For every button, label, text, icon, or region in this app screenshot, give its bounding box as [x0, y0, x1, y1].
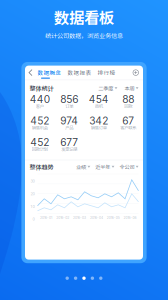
staticText: 2016-01	[40, 216, 52, 220]
staticText: 452	[30, 115, 49, 127]
staticText: 452	[30, 136, 49, 148]
staticText: 2016-05	[107, 216, 120, 220]
staticText: 2016-06	[124, 216, 137, 220]
staticText: 2016-03	[73, 216, 86, 220]
button[interactable]: 数据概览	[37, 68, 61, 77]
staticText: 排行榜	[97, 68, 115, 77]
staticText: 商机	[95, 103, 103, 109]
staticText: 677	[60, 136, 78, 148]
staticText: 数据报表	[67, 68, 91, 77]
button[interactable]: 342	[84, 116, 113, 130]
button[interactable]: 677	[54, 138, 84, 152]
staticText: 2016-04	[90, 216, 103, 220]
staticText: 40	[30, 166, 34, 171]
button[interactable]: Page 2	[74, 276, 77, 280]
button[interactable]: Page 3	[82, 276, 86, 280]
staticText: 10	[30, 204, 34, 209]
button[interactable]: Page 1	[65, 276, 69, 280]
staticText: 856	[60, 93, 78, 105]
button[interactable]: Settings	[132, 69, 143, 76]
staticText: 974	[60, 115, 78, 127]
staticText: 全公司	[119, 163, 134, 170]
staticText: 回款	[124, 103, 132, 109]
button[interactable]: 440	[25, 95, 54, 109]
staticText: 整体统计	[29, 84, 53, 93]
staticText: 67	[122, 115, 134, 127]
button[interactable]: 452	[25, 138, 54, 152]
button[interactable]: 454	[84, 95, 113, 109]
staticText: 订单	[65, 103, 73, 109]
staticText: 近半年	[95, 163, 110, 170]
button[interactable]: 974	[54, 116, 84, 130]
button[interactable]: Back	[25, 70, 37, 76]
button[interactable]: Page 4	[91, 276, 94, 280]
staticText: 30	[30, 179, 34, 183]
staticText: 0	[32, 217, 34, 221]
staticText: 产品	[65, 124, 73, 131]
staticText: 发票记录	[61, 146, 77, 152]
button[interactable]: 全公司	[119, 163, 138, 171]
staticText: 客户	[36, 103, 44, 109]
button[interactable]: 近半年	[95, 163, 114, 171]
button[interactable]: 88	[113, 95, 143, 109]
button[interactable]: 452	[25, 116, 54, 130]
button[interactable]: 数据报表	[67, 68, 91, 77]
staticText: 数据看板	[54, 6, 114, 28]
staticText: 454	[89, 93, 109, 105]
staticText: 统计公司数据，浏览业务信息	[45, 31, 123, 40]
button[interactable]: 本周	[124, 84, 138, 92]
staticText: 二季度	[98, 84, 113, 92]
staticText: 销售订单	[91, 124, 107, 131]
staticText: 20	[30, 191, 34, 196]
staticText: 销售机会	[32, 124, 48, 131]
staticText: 440	[30, 93, 50, 105]
staticText: 88	[122, 93, 134, 105]
button[interactable]: Page 5	[99, 276, 102, 280]
staticText: 业绩	[76, 163, 86, 170]
staticText: 回款计划	[32, 146, 48, 152]
staticText: 客户联系	[120, 124, 136, 131]
staticText: 2016-02	[56, 216, 69, 220]
button[interactable]: 67	[113, 116, 143, 130]
staticText: 整体趋势	[29, 162, 53, 171]
staticText: 本周	[124, 84, 134, 92]
button[interactable]: 二季度	[98, 84, 117, 92]
button[interactable]: 856	[54, 95, 84, 109]
staticText: 数据概览	[37, 68, 61, 77]
button[interactable]: 业绩	[76, 163, 90, 171]
staticText: 342	[89, 115, 108, 127]
button[interactable]: 排行榜	[97, 68, 115, 77]
